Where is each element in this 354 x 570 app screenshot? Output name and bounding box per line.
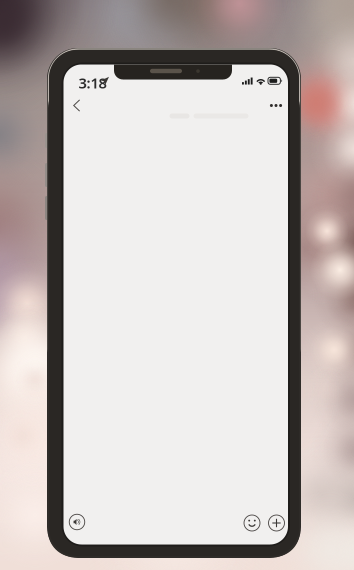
button[interactable]: Emoji bbox=[235, 506, 269, 540]
button[interactable]: Voice message bbox=[60, 505, 94, 539]
button[interactable]: Add attachment bbox=[259, 506, 293, 540]
button[interactable]: More options bbox=[256, 88, 296, 122]
button[interactable]: Back bbox=[56, 88, 96, 122]
staticText: 3:18 bbox=[78, 73, 106, 92]
